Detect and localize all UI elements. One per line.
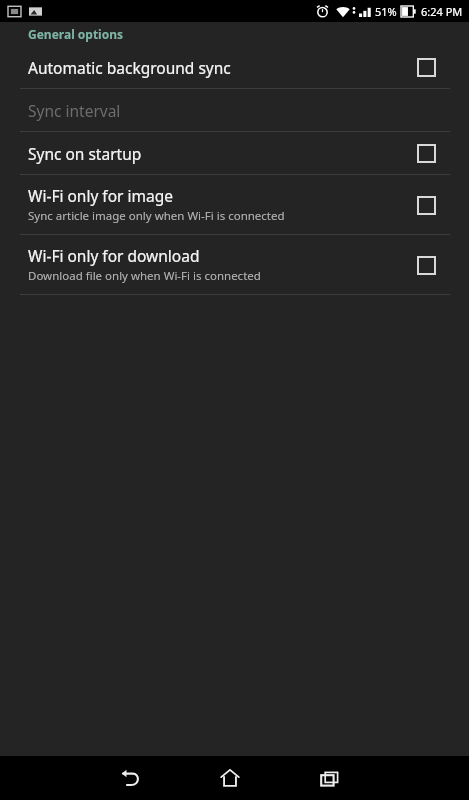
staticText: Automatic background sync: [28, 57, 231, 78]
button[interactable]: Home: [200, 756, 260, 800]
staticText: 6:24 PM: [421, 4, 463, 19]
staticText: Sync interval: [28, 100, 121, 121]
button[interactable]: Back: [100, 756, 160, 800]
button[interactable]: Wi-Fi only for image: [0, 175, 469, 234]
button[interactable]: Recents: [300, 756, 360, 800]
button[interactable]: Wi-Fi only for download: [0, 235, 469, 294]
staticText: Download file only when Wi-Fi is connect…: [28, 268, 261, 284]
button[interactable]: Sync interval: [0, 89, 469, 131]
staticText: Wi-Fi only for download: [28, 245, 200, 266]
staticText: Sync on startup: [28, 143, 142, 164]
button[interactable]: Sync on startup: [411, 138, 441, 168]
staticText: Wi-Fi only for image: [28, 185, 173, 206]
button[interactable]: Wi-Fi only for download: [411, 250, 441, 280]
staticText: General options: [28, 26, 124, 42]
button[interactable]: Automatic background sync: [0, 46, 469, 88]
staticText: 51%: [375, 4, 397, 19]
button[interactable]: Automatic background sync: [411, 52, 441, 82]
staticText: Sync article image only when Wi-Fi is co…: [28, 208, 285, 224]
button[interactable]: Wi-Fi only for image: [411, 190, 441, 220]
button[interactable]: Sync on startup: [0, 132, 469, 174]
